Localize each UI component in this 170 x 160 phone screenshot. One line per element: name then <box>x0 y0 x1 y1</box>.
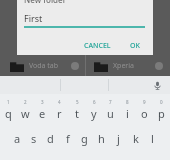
staticText: h <box>98 131 105 146</box>
staticText: w <box>21 106 30 121</box>
staticText: t <box>75 106 79 121</box>
staticText: y <box>91 106 97 121</box>
staticText: CANCEL <box>84 41 111 51</box>
staticText: Voda tab <box>29 61 59 71</box>
staticText: Xperia <box>113 61 134 71</box>
staticText: 5 <box>76 99 79 105</box>
staticText: 1 <box>7 99 10 105</box>
button[interactable]: s <box>25 124 42 152</box>
button[interactable]: h <box>93 124 110 152</box>
staticText: 0 <box>160 99 163 105</box>
button[interactable]: 7 <box>102 96 119 124</box>
button[interactable]: 6 <box>85 96 102 124</box>
staticText: r <box>57 106 62 121</box>
staticText: l <box>151 131 154 146</box>
button[interactable]: 5 <box>68 96 85 124</box>
button[interactable]: l <box>144 124 161 152</box>
staticText: f <box>66 131 70 146</box>
staticText: q <box>5 106 12 121</box>
button[interactable]: k <box>127 124 144 152</box>
button[interactable]: d <box>42 124 59 152</box>
staticText: d <box>47 131 54 146</box>
staticText: 3 <box>41 99 44 105</box>
staticText: a <box>14 131 21 146</box>
staticText: First <box>24 12 43 24</box>
staticText: s <box>31 131 37 146</box>
staticText: o <box>141 106 148 121</box>
button[interactable]: 0 <box>153 96 170 124</box>
button[interactable]: f <box>59 124 76 152</box>
button[interactable]: j <box>110 124 127 152</box>
staticText: 4 <box>58 99 61 105</box>
button[interactable]: a <box>9 124 25 152</box>
staticText: u <box>107 106 114 121</box>
button[interactable]: 1 <box>0 96 17 124</box>
staticText: i <box>126 106 129 121</box>
button[interactable]: 9 <box>136 96 153 124</box>
button[interactable]: Xperia <box>88 56 166 76</box>
staticText: e <box>39 106 46 121</box>
staticText: 6 <box>93 99 96 105</box>
staticText: 8 <box>126 99 129 105</box>
staticText: p <box>158 106 165 121</box>
staticText: g <box>81 131 88 146</box>
staticText: New folder <box>24 0 67 5</box>
staticText: k <box>133 131 139 146</box>
button[interactable]: First <box>24 9 145 26</box>
button[interactable]: OK <box>125 38 145 54</box>
button[interactable]: 4 <box>51 96 68 124</box>
staticText: OK <box>130 41 140 51</box>
button[interactable]: 2 <box>17 96 34 124</box>
button[interactable]: 8 <box>119 96 136 124</box>
button[interactable]: 3 <box>34 96 51 124</box>
button[interactable]: g <box>76 124 93 152</box>
staticText: 9 <box>143 99 146 105</box>
button[interactable]: CANCEL <box>79 38 116 54</box>
button[interactable]: Voice input <box>150 78 164 92</box>
button[interactable]: Voda tab <box>4 56 82 76</box>
staticText: j <box>117 131 120 146</box>
staticText: 2 <box>24 99 27 105</box>
staticText: 7 <box>109 99 112 105</box>
